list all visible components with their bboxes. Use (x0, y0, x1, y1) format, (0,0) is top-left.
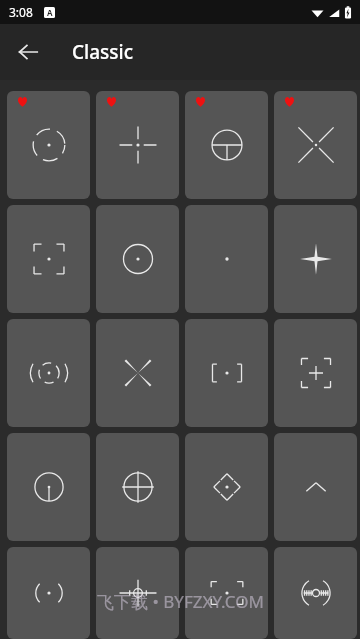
button[interactable]: Crosshair 5 (7, 205, 90, 313)
staticText: Classic (72, 39, 133, 65)
button[interactable]: Crosshair 6 (96, 205, 179, 313)
button[interactable]: Crosshair 1 (7, 91, 90, 199)
button[interactable]: Crosshair 15 (185, 433, 268, 541)
button[interactable]: Crosshair 8 (274, 205, 357, 313)
button[interactable]: Crosshair 17 (7, 547, 90, 639)
button[interactable]: Crosshair 13 (7, 433, 90, 541)
button[interactable]: Crosshair 11 (185, 319, 268, 427)
button[interactable]: Crosshair 12 (274, 319, 357, 427)
button[interactable]: Crosshair 14 (96, 433, 179, 541)
button[interactable]: Crosshair 10 (96, 319, 179, 427)
button[interactable]: Crosshair 9 (7, 319, 90, 427)
button[interactable]: Crosshair 7 (185, 205, 268, 313)
staticText: A (47, 7, 53, 18)
button[interactable]: Crosshair 18 (96, 547, 179, 639)
button[interactable]: Crosshair 3 (185, 91, 268, 199)
button[interactable]: Back (8, 32, 48, 72)
button[interactable]: Crosshair 19 (185, 547, 268, 639)
staticText: 3:08 (9, 4, 33, 20)
button[interactable]: Crosshair 20 (274, 547, 357, 639)
staticText: 飞下载 • BYFZXY.COM (97, 590, 264, 613)
button[interactable]: Crosshair 16 (274, 433, 357, 541)
button[interactable]: Crosshair 4 (274, 91, 357, 199)
button[interactable]: Crosshair 2 (96, 91, 179, 199)
